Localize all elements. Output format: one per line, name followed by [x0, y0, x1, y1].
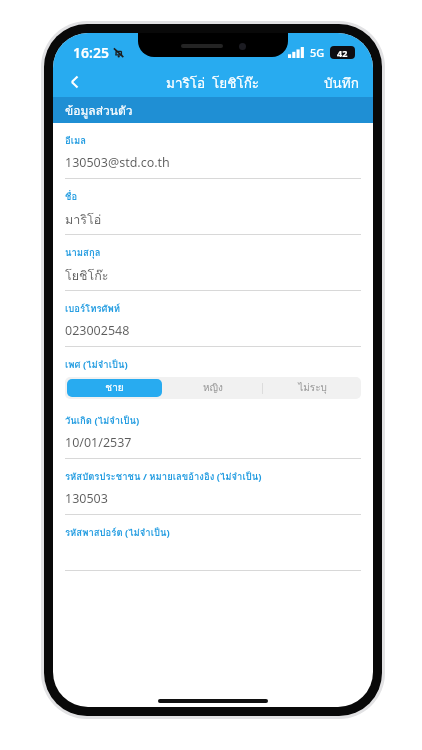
staticText: 10/01/2537	[65, 434, 132, 451]
staticText: บันทึก	[324, 72, 359, 93]
staticText: รหัสบัตรประชาชน / หมายเลขอ้างอิง (ไม่จำเ…	[65, 469, 262, 484]
staticText: 5G	[310, 45, 325, 60]
staticText: 16:25	[73, 43, 109, 62]
staticText: มาริโอ่	[65, 210, 102, 227]
button[interactable]: วันเกิด (ไม่จำเป็น)	[53, 403, 373, 459]
staticText: เบอร์โทรศัพท์	[65, 301, 121, 316]
staticText: หญิง	[203, 380, 223, 396]
button[interactable]: หญิง	[164, 377, 262, 399]
staticText: 130503@std.co.th	[65, 154, 170, 171]
staticText: ข้อมูลส่วนตัว	[65, 101, 133, 120]
staticText: เพศ (ไม่จำเป็น)	[65, 357, 128, 372]
staticText: ชาย	[105, 380, 124, 396]
button[interactable]: อีเมล	[53, 123, 373, 179]
staticText: ไม่ระบุ	[298, 380, 327, 396]
button[interactable]: เบอร์โทรศัพท์	[53, 291, 373, 347]
button[interactable]: รหัสบัตรประชาชน / หมายเลขอ้างอิง (ไม่จำเ…	[53, 459, 373, 515]
staticText: 023002548	[65, 322, 130, 339]
staticText: ชื่อ	[65, 189, 78, 204]
button[interactable]: รหัสพาสปอร์ต (ไม่จำเป็น)	[53, 515, 373, 571]
staticText: นามสกุล	[65, 245, 101, 260]
button[interactable]: นามสกุล	[53, 235, 373, 291]
staticText: อีเมล	[65, 133, 87, 148]
button[interactable]: ชาย	[67, 379, 162, 397]
staticText: วันเกิด (ไม่จำเป็น)	[65, 413, 140, 428]
staticText: 42	[337, 47, 348, 59]
button[interactable]: Back	[53, 67, 97, 97]
staticText: 130503	[65, 490, 108, 507]
staticText: มาริโอ่ โยชิโก๊ะ	[166, 72, 260, 93]
button[interactable]: ไม่ระบุ	[263, 377, 361, 399]
staticText: โยชิโก๊ะ	[65, 266, 109, 283]
staticText: รหัสพาสปอร์ต (ไม่จำเป็น)	[65, 525, 170, 540]
button[interactable]: ชื่อ	[53, 179, 373, 235]
button[interactable]: บันทึก	[324, 67, 359, 97]
